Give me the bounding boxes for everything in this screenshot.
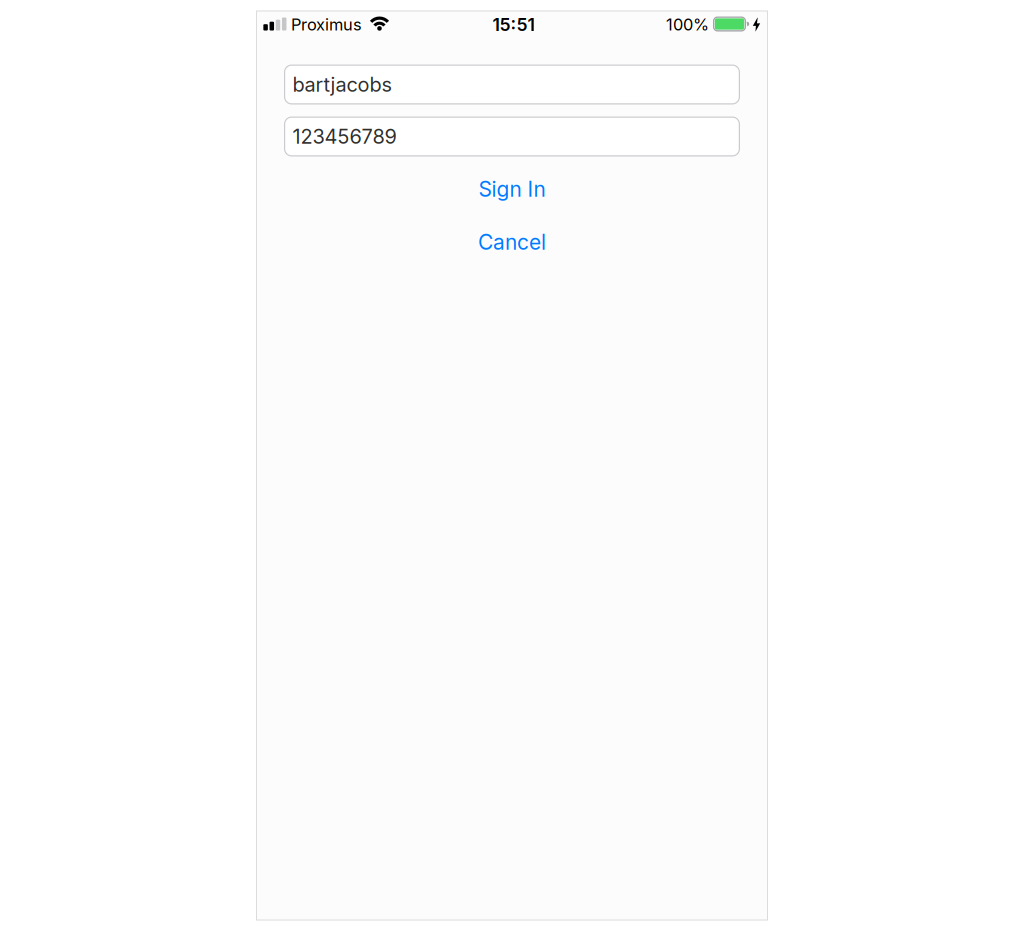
textField[interactable]: bartjacobs xyxy=(292,72,740,97)
staticText: 100% xyxy=(666,15,709,34)
staticText: bartjacobs xyxy=(292,72,391,97)
staticText: Cancel xyxy=(478,229,546,255)
staticText: Proximus xyxy=(291,15,362,34)
staticText: Sign In xyxy=(478,176,545,202)
staticText: 123456789 xyxy=(292,124,396,149)
button[interactable]: Cancel xyxy=(478,221,546,262)
button[interactable]: Sign In xyxy=(478,168,545,209)
staticText: 15:51 xyxy=(492,14,534,35)
textField[interactable]: 123456789 xyxy=(292,124,740,149)
